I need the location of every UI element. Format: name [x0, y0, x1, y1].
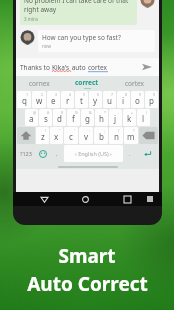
button[interactable]: +	[123, 109, 136, 126]
staticText: :	[89, 128, 90, 133]
button[interactable]: %	[67, 109, 80, 126]
staticText: f	[72, 113, 75, 124]
staticText: Thanks to	[20, 63, 52, 72]
staticText: t	[80, 95, 83, 106]
staticText: &	[89, 110, 92, 115]
button[interactable]: 7	[103, 91, 116, 108]
staticText: 6	[97, 92, 100, 97]
staticText: m	[127, 131, 135, 142]
staticText: v	[84, 131, 89, 142]
button[interactable]: 0	[145, 91, 158, 108]
staticText: ?123	[20, 150, 32, 157]
staticText: cornex	[29, 79, 50, 88]
staticText: j	[114, 113, 117, 124]
staticText: No problem I can take care of that right…	[24, 0, 133, 14]
staticText: q	[22, 95, 27, 106]
button[interactable]: $	[53, 109, 66, 126]
staticText: ;	[104, 128, 105, 133]
staticText: d	[57, 113, 62, 124]
button[interactable]: Home	[78, 192, 92, 206]
button[interactable]: 2	[32, 91, 46, 108]
button[interactable]: '	[64, 127, 78, 144]
button[interactable]: Enter	[137, 145, 158, 162]
staticText: 9	[139, 92, 142, 97]
button[interactable]: cornex	[16, 76, 63, 90]
staticText: e	[51, 95, 56, 106]
button[interactable]: 4	[61, 91, 74, 108]
staticText: p	[149, 95, 154, 106]
button[interactable]: 1	[17, 91, 31, 108]
staticText: (	[146, 110, 148, 115]
button[interactable]: ‹ English (US) ›	[64, 145, 123, 162]
staticText: "	[59, 128, 61, 133]
button[interactable]: Recents	[120, 192, 134, 206]
staticText: a	[29, 113, 34, 124]
button[interactable]: -	[109, 109, 122, 126]
button[interactable]: 3	[47, 91, 60, 108]
staticText: i	[122, 95, 125, 106]
staticText: correct	[75, 78, 99, 87]
staticText: u	[107, 95, 112, 106]
button[interactable]: correct	[63, 76, 111, 90]
button[interactable]: Emoji	[36, 145, 50, 162]
staticText: w	[36, 95, 43, 106]
staticText: ‹ English (US) ›	[75, 150, 112, 157]
staticText: Kika's	[52, 63, 70, 72]
button[interactable]: #	[39, 109, 52, 126]
staticText: ?	[133, 128, 135, 133]
button[interactable]: :	[79, 127, 93, 144]
button[interactable]: No problem I can take care of that right…	[24, 0, 133, 22]
button[interactable]: 9	[131, 91, 144, 108]
staticText: 8	[125, 92, 128, 97]
staticText: 7	[111, 92, 114, 97]
staticText: auto	[70, 63, 88, 72]
staticText: 0	[153, 92, 156, 97]
staticText: n	[114, 131, 119, 142]
staticText: -	[118, 110, 120, 115]
button[interactable]: 8	[117, 91, 130, 108]
staticText: o	[135, 95, 140, 106]
staticText: Auto Correct	[27, 271, 148, 297]
button[interactable]: ?123	[17, 145, 35, 162]
button[interactable]: !	[36, 127, 49, 144]
staticText: $	[61, 110, 64, 115]
button[interactable]: &	[81, 109, 94, 126]
button[interactable]: (	[137, 109, 150, 126]
staticText: s	[44, 113, 48, 124]
staticText: g	[85, 113, 90, 124]
button[interactable]: ,	[51, 145, 63, 162]
staticText: 3	[55, 92, 58, 97]
button[interactable]: /	[109, 127, 123, 144]
button[interactable]: cortex	[111, 76, 159, 90]
staticText: %	[75, 110, 78, 115]
button[interactable]: Backspace	[139, 127, 158, 144]
staticText: 2	[41, 92, 44, 97]
staticText: k	[127, 113, 132, 124]
staticText: y	[93, 95, 98, 106]
button[interactable]: ;	[94, 127, 108, 144]
button[interactable]: Send	[139, 59, 155, 75]
staticText: How can you type so fast?	[42, 33, 121, 42]
staticText: .	[129, 150, 131, 158]
staticText: !	[45, 128, 46, 133]
staticText: 3 mins	[24, 16, 39, 22]
button[interactable]: 6	[89, 91, 102, 108]
staticText: /	[118, 128, 120, 133]
button[interactable]: Thanks to	[20, 58, 155, 76]
button[interactable]: ?	[124, 127, 138, 144]
staticText: 1	[26, 92, 29, 97]
button[interactable]: *	[95, 109, 108, 126]
staticText: z	[41, 131, 45, 142]
button[interactable]: Shift	[17, 127, 35, 144]
staticText: ,	[56, 150, 58, 158]
button[interactable]: 5	[75, 91, 88, 108]
staticText: now	[42, 43, 51, 49]
staticText: c	[69, 131, 73, 142]
staticText: #	[47, 110, 50, 115]
button[interactable]: Keyboard switcher	[144, 193, 156, 205]
button[interactable]: Back	[37, 192, 51, 206]
button[interactable]: How can you type so fast?	[42, 33, 151, 49]
button[interactable]: @	[25, 109, 38, 126]
button[interactable]: "	[50, 127, 63, 144]
